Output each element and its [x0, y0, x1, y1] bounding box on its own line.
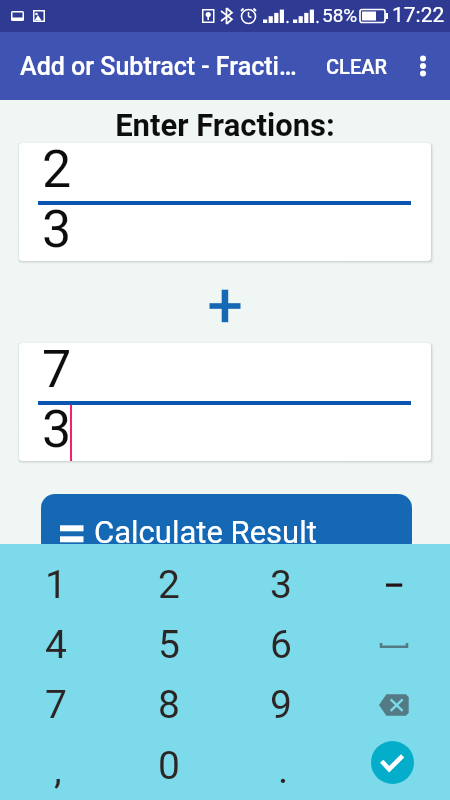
- staticText: 58%: [322, 4, 358, 26]
- button[interactable]: 7: [0, 675, 112, 735]
- staticText: 8: [158, 682, 180, 728]
- staticText: 17:22: [392, 3, 445, 28]
- button[interactable]: 8: [113, 675, 225, 735]
- staticText: 3: [270, 562, 292, 608]
- staticText: 7: [42, 343, 72, 400]
- staticText: 1: [45, 562, 67, 608]
- staticText: 9: [270, 682, 292, 728]
- button[interactable]: 7: [19, 343, 431, 461]
- button[interactable]: 2: [113, 555, 225, 615]
- staticText: 0: [158, 743, 180, 789]
- button[interactable]: ,: [0, 736, 112, 796]
- staticText: .: [278, 747, 289, 793]
- staticText: Enter Fractions:: [0, 107, 450, 143]
- staticText: 5: [158, 622, 180, 668]
- button[interactable]: 1: [0, 555, 112, 615]
- button[interactable]: CLEAR: [318, 41, 399, 92]
- staticText: Calculate Result: [94, 514, 317, 550]
- button[interactable]: 5: [113, 615, 225, 675]
- button[interactable]: .: [225, 736, 337, 796]
- button[interactable]: 0: [113, 736, 225, 796]
- button[interactable]: 4: [0, 615, 112, 675]
- button[interactable]: 9: [225, 675, 337, 735]
- staticText: ,: [54, 747, 62, 793]
- staticText: CLEAR: [326, 55, 387, 78]
- staticText: 4: [45, 622, 67, 668]
- button[interactable]: Space: [337, 615, 450, 675]
- staticText: 3: [42, 199, 72, 260]
- button[interactable]: 3: [225, 555, 337, 615]
- button[interactable]: 6: [225, 615, 337, 675]
- button[interactable]: 2: [19, 143, 431, 261]
- staticText: 2: [158, 562, 180, 608]
- button[interactable]: Enter: [337, 736, 450, 796]
- staticText: 3: [42, 399, 72, 460]
- button[interactable]: Minus: [337, 555, 450, 615]
- button[interactable]: More options: [399, 42, 447, 90]
- button[interactable]: Backspace: [337, 675, 450, 735]
- staticText: Add or Subtract - Fracti…: [20, 52, 312, 81]
- staticText: 2: [42, 143, 72, 200]
- staticText: 6: [270, 622, 292, 668]
- button[interactable]: Calculate Result: [41, 494, 412, 556]
- staticText: 7: [45, 682, 67, 728]
